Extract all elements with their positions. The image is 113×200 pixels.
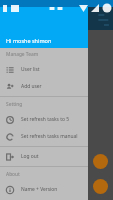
button[interactable]: Add user [0,78,88,95]
staticText: Set refresh tasks manual [21,133,78,140]
staticText: Log out [21,153,39,160]
button[interactable]: User list [0,61,88,78]
button[interactable]: Task item [93,154,108,169]
button[interactable]: Hi moshe shimon [0,0,88,48]
staticText: Manage Team [6,51,39,58]
button[interactable]: Name + Version [0,181,88,198]
staticText: Name + Version [21,186,58,193]
button[interactable]: Task item [93,179,108,194]
staticText: Add user [21,83,42,90]
staticText: Set refresh tasks to 5 minutes [21,116,85,123]
staticText: Setting [6,101,23,108]
button[interactable]: Set refresh tasks manual [0,128,88,145]
staticText: User list [21,66,40,73]
button[interactable]: Set refresh tasks to 5 minutes [0,111,88,128]
staticText: About [6,171,20,178]
staticText: Hi moshe shimon [6,37,52,44]
button[interactable]: Log out [0,148,88,165]
